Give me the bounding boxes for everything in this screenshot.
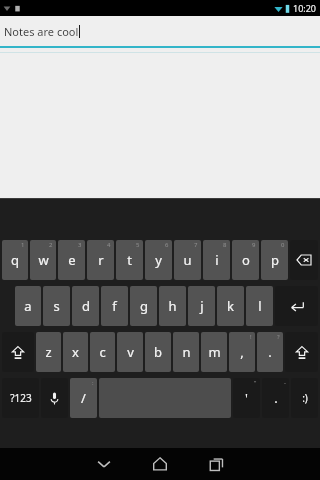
staticText: z	[45, 343, 52, 361]
staticText: 7	[194, 241, 198, 249]
button[interactable]: k	[217, 286, 244, 326]
staticText: u	[183, 251, 192, 269]
staticText: h	[168, 297, 177, 315]
staticText: "	[254, 379, 257, 387]
staticText: y	[155, 251, 162, 269]
button[interactable]: y	[145, 240, 172, 280]
button[interactable]: d	[72, 286, 99, 326]
staticText: 5	[136, 241, 140, 249]
staticText: n	[182, 343, 191, 361]
staticText: ,	[240, 343, 244, 361]
button[interactable]: n	[173, 332, 199, 372]
button[interactable]: p	[261, 240, 288, 280]
button[interactable]: Backspace	[290, 240, 318, 280]
button[interactable]: v	[117, 332, 143, 372]
staticText: !	[250, 333, 252, 341]
button[interactable]: w	[30, 240, 56, 280]
button[interactable]: e	[58, 240, 85, 280]
button[interactable]: t	[116, 240, 143, 280]
button[interactable]: '	[233, 378, 260, 418]
staticText: i	[215, 251, 219, 269]
staticText: ?123	[10, 391, 32, 405]
staticText: 0	[281, 241, 285, 249]
staticText: k	[227, 297, 234, 315]
staticText: 9	[252, 241, 256, 249]
button[interactable]: Enter	[275, 286, 318, 326]
button[interactable]: :)	[291, 378, 318, 418]
button[interactable]: Shift	[2, 332, 34, 372]
staticText: .	[268, 343, 272, 361]
button[interactable]: l	[246, 286, 273, 326]
staticText: /	[81, 389, 86, 407]
staticText: b	[154, 343, 162, 361]
button[interactable]: u	[174, 240, 201, 280]
staticText: 6	[165, 241, 169, 249]
staticText: a	[24, 297, 32, 315]
button[interactable]: c	[90, 332, 115, 372]
staticText: 3	[78, 241, 82, 249]
button[interactable]: .	[262, 378, 289, 418]
staticText: p	[271, 251, 279, 269]
staticText: 1	[21, 241, 25, 249]
staticText: :	[92, 379, 94, 387]
staticText: 8	[223, 241, 227, 249]
staticText: 2	[49, 241, 53, 249]
staticText: c	[99, 343, 106, 361]
button[interactable]: o	[232, 240, 259, 280]
staticText: m	[208, 343, 221, 361]
staticText: r	[98, 251, 104, 269]
staticText: v	[127, 343, 134, 361]
staticText: e	[68, 251, 76, 269]
button[interactable]: j	[188, 286, 215, 326]
staticText: Notes are cool	[4, 24, 79, 39]
button[interactable]: .	[257, 332, 283, 372]
button[interactable]: a	[15, 286, 41, 326]
staticText: j	[200, 297, 204, 315]
button[interactable]: s	[43, 286, 70, 326]
staticText: .	[274, 389, 278, 407]
button[interactable]: Recent apps	[193, 448, 239, 480]
staticText: t	[127, 251, 132, 269]
button[interactable]: Home	[137, 448, 183, 480]
button[interactable]: Hide keyboard	[81, 448, 127, 480]
staticText: 10:20	[293, 2, 317, 14]
button[interactable]: f	[101, 286, 128, 326]
button[interactable]: ?123	[2, 378, 39, 418]
staticText: -	[284, 379, 286, 387]
staticText: g	[140, 297, 148, 315]
staticText: 4	[107, 241, 111, 249]
button[interactable]: r	[87, 240, 114, 280]
button[interactable]: x	[63, 332, 88, 372]
staticText: s	[53, 297, 60, 315]
staticText: x	[72, 343, 79, 361]
staticText: :)	[302, 391, 308, 405]
staticText: w	[38, 251, 49, 269]
button[interactable]: Shift	[285, 332, 318, 372]
button[interactable]: /	[70, 378, 97, 418]
button[interactable]: z	[36, 332, 61, 372]
button[interactable]: q	[2, 240, 28, 280]
button[interactable]: i	[203, 240, 230, 280]
staticText: '	[245, 389, 248, 407]
staticText: d	[82, 297, 90, 315]
staticText: o	[242, 251, 250, 269]
staticText: ?	[277, 333, 280, 341]
button[interactable]: b	[145, 332, 171, 372]
staticText: f	[112, 297, 117, 315]
button[interactable]: m	[201, 332, 227, 372]
staticText: l	[258, 297, 262, 315]
button[interactable]: Notes are cool	[0, 16, 320, 46]
staticText: q	[11, 251, 19, 269]
button[interactable]: ,	[229, 332, 255, 372]
button[interactable]: Voice input	[41, 378, 68, 418]
button[interactable]: h	[159, 286, 186, 326]
button[interactable]: g	[130, 286, 157, 326]
